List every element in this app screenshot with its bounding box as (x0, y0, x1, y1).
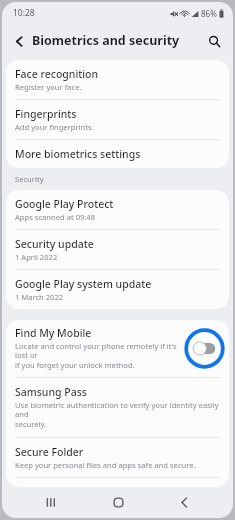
staticText: Face recognition (15, 67, 99, 81)
button[interactable]: More biometrics settings (6, 140, 229, 168)
staticText: Locate and control your phone remotely i… (15, 341, 183, 371)
button[interactable]: Security update (6, 230, 229, 269)
button[interactable]: Fingerprints (6, 100, 229, 139)
button[interactable]: Back (167, 487, 201, 518)
button[interactable]: Search (202, 29, 226, 53)
staticText: Use biometric authentication to verify y… (15, 400, 220, 430)
button[interactable]: Secure Folder (6, 438, 229, 477)
staticText: Google Play Protect (15, 197, 114, 211)
button[interactable]: Find My Mobile switch, off (183, 327, 226, 370)
staticText: Fingerprints (15, 107, 77, 121)
staticText: 1 March 2022 (15, 292, 64, 302)
staticText: Find My Mobile (15, 326, 92, 340)
staticText: 1 April 2022 (15, 252, 58, 262)
staticText: Keep your personal files and apps safe a… (15, 460, 196, 470)
staticText: Google Play system update (15, 277, 152, 291)
button[interactable]: Home (101, 487, 135, 518)
staticText: Add your fingerprints. (15, 122, 94, 132)
staticText: Register your face. (15, 82, 82, 92)
staticText: Biometrics and security (32, 32, 180, 49)
button[interactable]: Find My Mobile (6, 320, 229, 377)
staticText: 10:28 (13, 7, 35, 19)
staticText: Apps scanned at 09:48 (15, 212, 96, 222)
button[interactable]: Google Play system update (6, 270, 229, 309)
button[interactable]: Recent apps (34, 487, 68, 518)
staticText: More biometrics settings (15, 147, 141, 161)
button[interactable]: Google Play Protect (6, 190, 229, 229)
button[interactable]: Face recognition (6, 60, 229, 99)
staticText: Security update (15, 237, 94, 251)
staticText: Security (15, 174, 44, 184)
button[interactable]: Samsung Pass (6, 378, 229, 437)
staticText: 86% (201, 8, 217, 19)
staticText: Secure Folder (15, 445, 84, 459)
button[interactable]: Navigate up (7, 29, 31, 53)
staticText: Samsung Pass (15, 385, 87, 399)
